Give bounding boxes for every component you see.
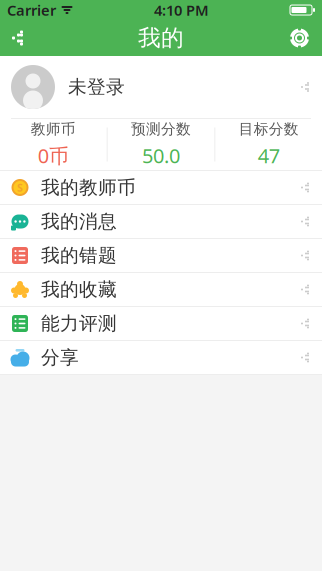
staticText: S: [17, 180, 23, 195]
staticText: 我的教师币: [41, 176, 136, 199]
button[interactable]: 能力评测: [0, 307, 322, 340]
button[interactable]: 我的消息: [0, 205, 322, 238]
staticText: 未登录: [68, 75, 125, 98]
button[interactable]: 分享: [0, 341, 322, 374]
staticText: Carrier: [7, 0, 56, 20]
staticText: 50.0: [142, 142, 180, 169]
staticText: 4:10 PM: [154, 0, 209, 20]
staticText: 0币: [38, 142, 69, 169]
staticText: 目标分数: [239, 120, 299, 138]
staticText: 能力评测: [41, 312, 117, 335]
staticText: 分享: [41, 346, 79, 369]
button[interactable]: 我的错题: [0, 239, 322, 272]
staticText: 我的消息: [41, 210, 117, 233]
button[interactable]: S: [0, 171, 322, 204]
button[interactable]: Back: [0, 20, 52, 56]
button[interactable]: Settings: [270, 20, 322, 56]
staticText: 预测分数: [131, 120, 191, 138]
staticText: 我的错题: [41, 244, 117, 267]
staticText: 我的收藏: [41, 278, 117, 301]
staticText: 47: [258, 142, 280, 169]
staticText: 我的: [138, 24, 184, 52]
staticText: 教师币: [31, 120, 76, 138]
button[interactable]: 我的收藏: [0, 273, 322, 306]
button[interactable]: 未登录: [0, 56, 322, 118]
